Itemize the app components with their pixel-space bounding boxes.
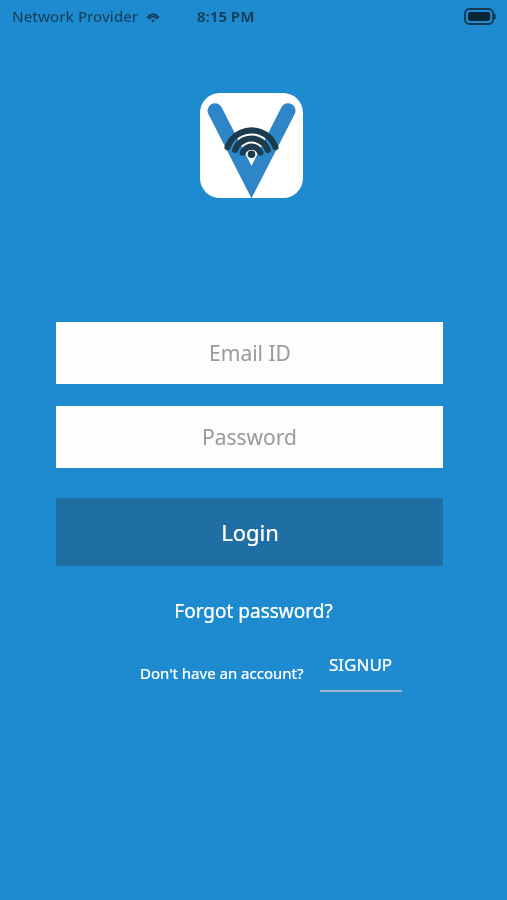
- staticText: Login: [221, 517, 279, 547]
- staticText: Don't have an account?: [140, 663, 304, 683]
- button[interactable]: SIGNUP: [320, 653, 402, 692]
- button[interactable]: Email ID: [56, 322, 443, 384]
- staticText: 8:15 PM: [197, 6, 255, 26]
- staticText: Forgot password?: [174, 598, 333, 624]
- staticText: Password: [202, 423, 297, 452]
- button[interactable]: Forgot password?: [0, 598, 507, 624]
- staticText: Email ID: [209, 339, 291, 368]
- button[interactable]: Password: [56, 406, 443, 468]
- staticText: Network Provider: [12, 6, 139, 26]
- button[interactable]: Login: [56, 498, 443, 566]
- staticText: SIGNUP: [329, 653, 393, 676]
